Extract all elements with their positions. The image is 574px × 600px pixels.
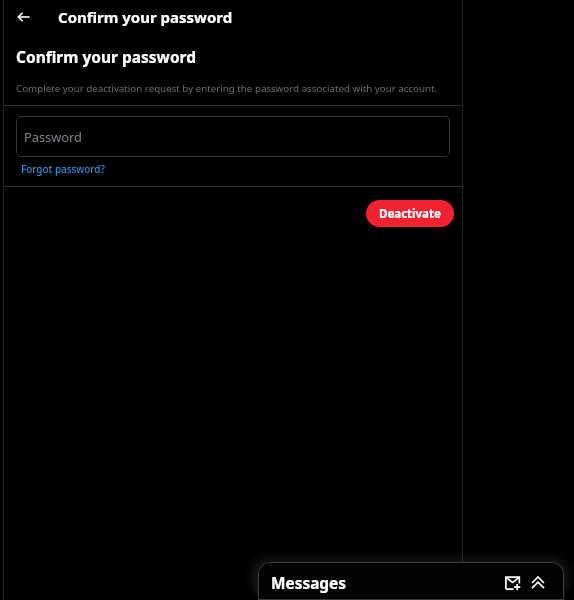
button[interactable]: Password [16,116,450,157]
staticText: Password [24,128,82,145]
staticText: Forgot password? [21,162,105,175]
staticText: Deactivate [379,206,441,222]
staticText: Confirm your password [16,46,196,67]
button[interactable]: Forgot password? [21,162,105,175]
button[interactable]: Messages [258,562,564,600]
button[interactable]: Deactivate [366,200,454,227]
staticText: Complete your deactivation request by en… [16,82,438,95]
staticText: Messages [271,573,347,594]
button[interactable]: Back [9,2,39,32]
button[interactable]: Expand messages [524,569,552,597]
staticText: Confirm your password [58,7,233,27]
button[interactable]: New message [499,569,527,597]
